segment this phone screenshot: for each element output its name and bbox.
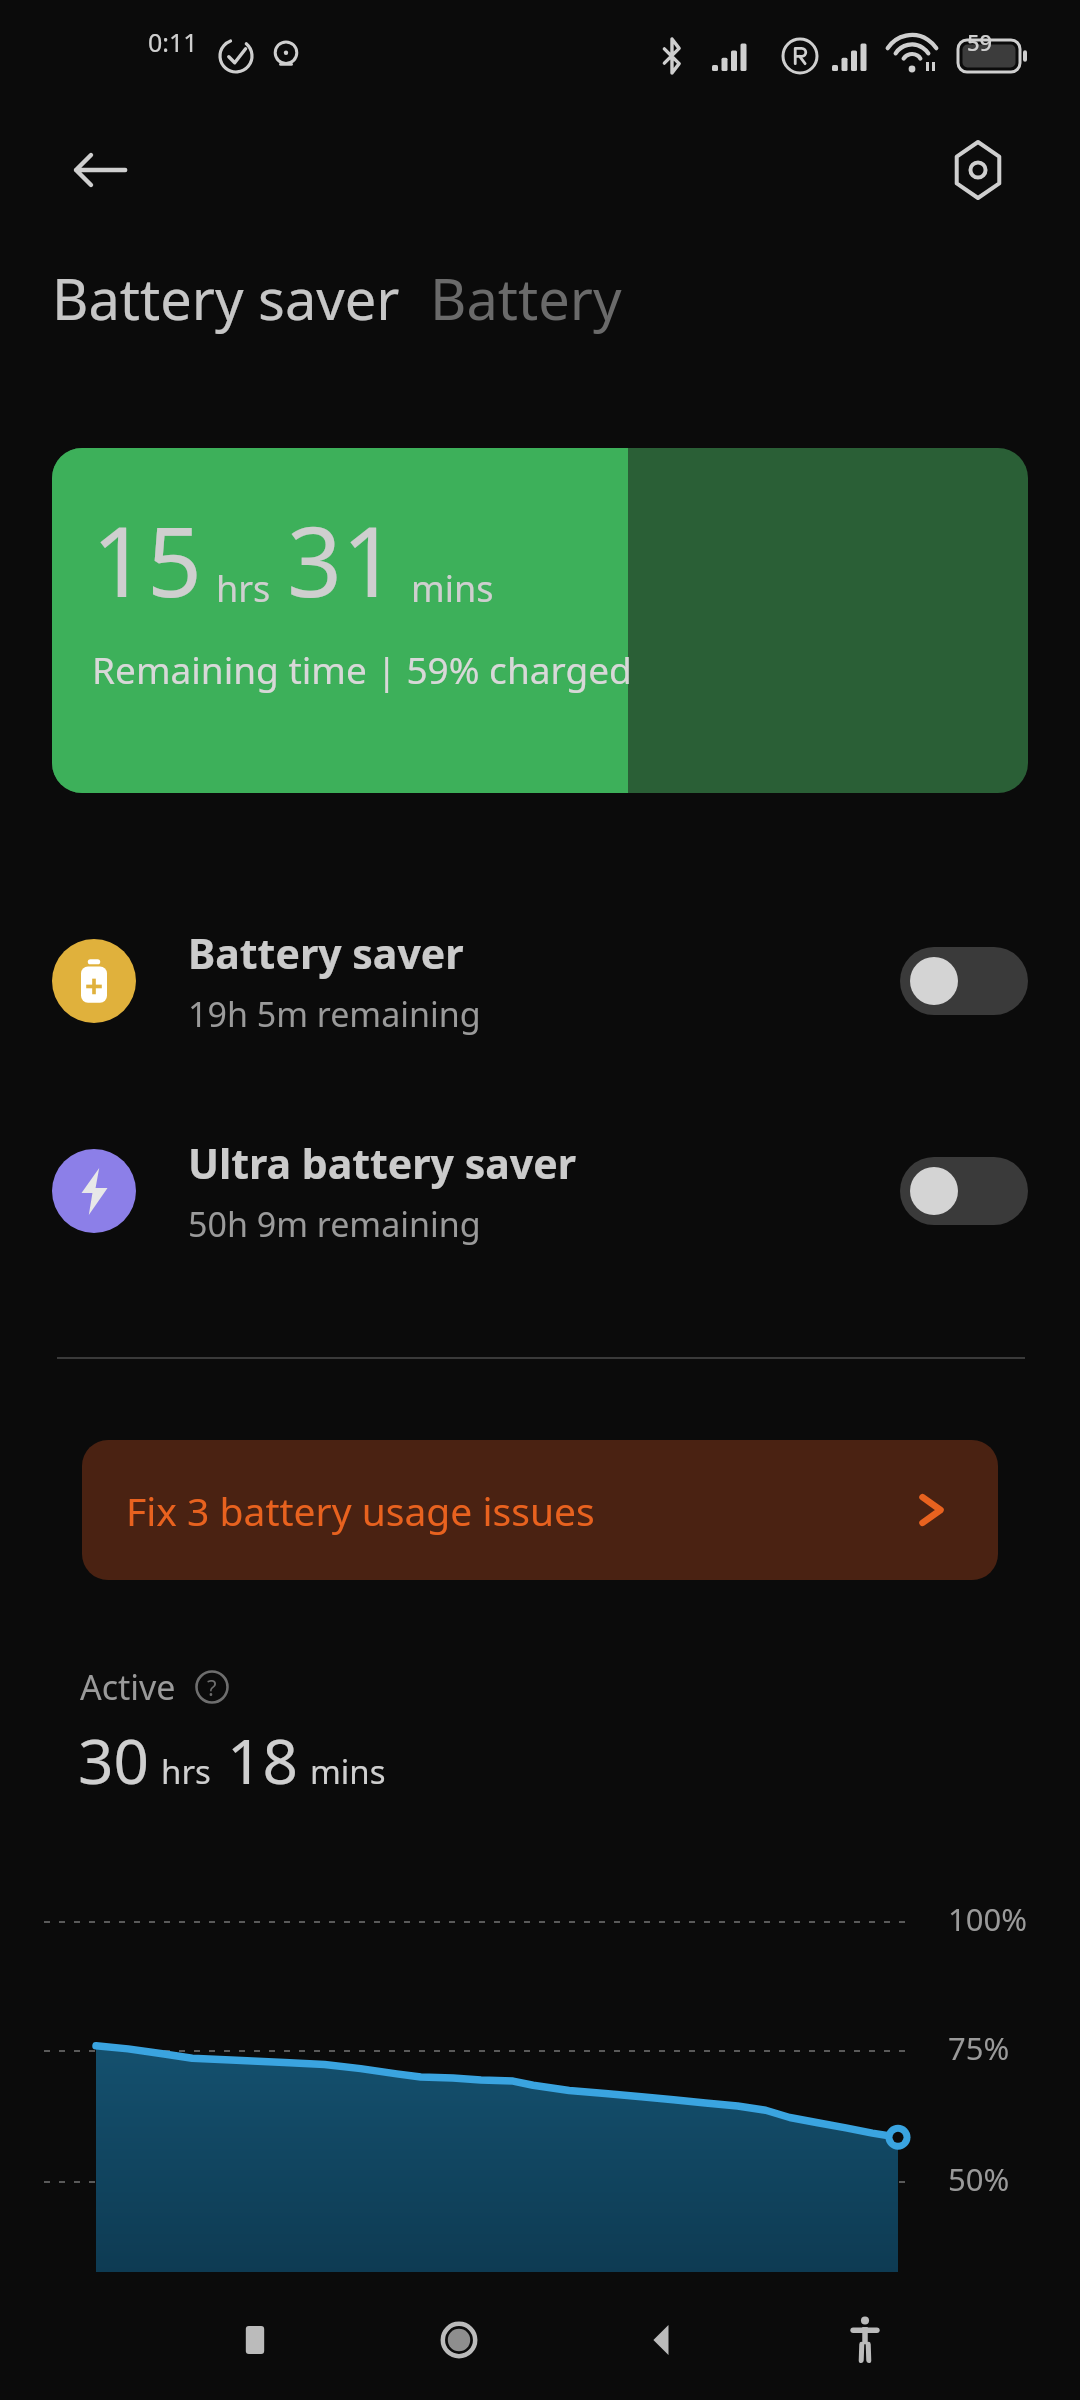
staticText: Battery saver <box>52 260 400 336</box>
button[interactable]: Ultra battery saver <box>52 1108 1028 1274</box>
staticText: Battery <box>430 260 622 336</box>
staticText: ? <box>207 1672 217 1702</box>
staticText: mins <box>411 564 494 613</box>
button[interactable]: Back <box>607 2285 717 2395</box>
staticText: hrs <box>216 564 271 613</box>
staticText: 59 <box>967 27 993 57</box>
staticText: 50% <box>948 2158 1010 2200</box>
button[interactable]: Recents <box>200 2285 310 2395</box>
button[interactable]: Battery saver <box>52 898 1028 1064</box>
staticText: 19h 5m remaining <box>188 991 481 1037</box>
staticText: Remaining time | 59% charged <box>92 644 632 694</box>
button[interactable]: Battery <box>430 260 622 336</box>
button[interactable]: Settings <box>930 122 1026 218</box>
staticText: 31 <box>287 494 397 625</box>
button[interactable]: 15 <box>52 448 1028 793</box>
button[interactable]: Accessibility <box>810 2285 920 2395</box>
button[interactable]: Fix 3 battery usage issues <box>82 1440 998 1580</box>
button[interactable]: Battery saver <box>52 260 400 336</box>
button[interactable]: Battery saver toggle <box>900 947 1028 1015</box>
staticText: 75% <box>948 2027 1010 2069</box>
staticText: 50h 9m remaining <box>188 1201 481 1247</box>
button[interactable]: Help about active time <box>192 1667 232 1707</box>
staticText: Ultra battery saver <box>188 1135 577 1191</box>
staticText: 18 <box>227 1718 298 1802</box>
button[interactable]: Back <box>52 122 148 218</box>
staticText: Battery saver <box>188 925 464 981</box>
staticText: 100% <box>948 1898 1027 1940</box>
staticText: Fix 3 battery usage issues <box>126 1484 595 1537</box>
staticText: mins <box>310 1749 386 1794</box>
button[interactable]: Home <box>404 2285 514 2395</box>
staticText: 30 <box>78 1718 149 1802</box>
staticText: 0:11 <box>148 25 198 59</box>
staticText: hrs <box>161 1749 211 1794</box>
staticText: Active <box>80 1664 176 1710</box>
button[interactable]: Ultra battery saver toggle <box>900 1157 1028 1225</box>
staticText: 15 <box>92 494 202 625</box>
